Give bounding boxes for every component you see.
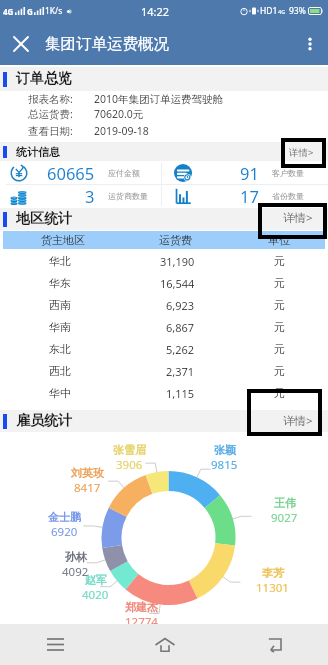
button[interactable]: 17: [164, 184, 328, 207]
staticText: 12774: [125, 614, 158, 630]
staticText: 元: [274, 364, 285, 378]
staticText: 元: [274, 386, 285, 400]
staticText: 地区统计: [16, 210, 72, 228]
staticText: 2,371: [166, 364, 195, 379]
staticText: 赵军: [85, 573, 107, 587]
staticText: 9815: [211, 457, 238, 473]
staticText: 总运货费:: [28, 107, 73, 121]
staticText: 张雪眉: [113, 443, 146, 457]
staticText: 31,190: [160, 254, 195, 269]
staticText: 雇员统计: [16, 412, 72, 430]
staticText: 8417: [74, 480, 101, 496]
staticText: 2019-09-18: [94, 124, 149, 138]
staticText: 70620.0元: [94, 107, 144, 121]
button[interactable]: 雇员统计: [0, 410, 328, 432]
button[interactable]: 3: [0, 184, 164, 207]
staticText: 元: [274, 276, 285, 290]
staticText: 9027: [271, 510, 298, 526]
staticText: 93%: [289, 5, 306, 17]
staticText: 孙林: [65, 550, 87, 564]
staticText: 91: [240, 162, 259, 184]
staticText: 4G: [3, 6, 14, 17]
staticText: 华北: [49, 254, 71, 268]
button[interactable]: 详情>: [274, 141, 314, 163]
button[interactable]: Home: [110, 624, 219, 665]
staticText: 运货费: [159, 233, 192, 247]
button[interactable]: 详情>: [273, 410, 313, 432]
staticText: HD1: [260, 5, 278, 17]
staticText: 郑建杰: [125, 600, 158, 614]
staticText: 4092: [62, 564, 89, 580]
button[interactable]: 详情>: [273, 207, 313, 229]
staticText: 4020: [82, 587, 109, 603]
staticText: G: [27, 6, 33, 17]
staticText: 11301: [256, 580, 289, 596]
button[interactable]: More options: [295, 29, 324, 58]
button[interactable]: Recent apps: [0, 624, 110, 665]
staticText: 报表名称:: [28, 92, 73, 106]
staticText: 17: [240, 185, 259, 207]
staticText: 元: [274, 254, 285, 268]
staticText: 运货商数量: [108, 191, 148, 201]
staticText: 货主地区: [41, 233, 85, 247]
staticText: 60665: [47, 162, 95, 184]
staticText: 集团订单运费概况: [45, 34, 169, 54]
staticText: 刘英玫: [71, 466, 104, 480]
staticText: 应付金额: [108, 168, 140, 178]
staticText: 详情>: [283, 210, 313, 226]
button[interactable]: Back: [219, 624, 328, 665]
button[interactable]: 订单总览: [0, 67, 328, 91]
staticText: 2010年集团订单运费驾驶舱: [94, 92, 224, 106]
staticText: 1K/s: [45, 5, 63, 17]
staticText: 省份数量: [272, 191, 304, 201]
staticText: 3906: [116, 457, 143, 473]
button[interactable]: 60665: [0, 161, 164, 184]
staticText: 客户数量: [272, 168, 304, 178]
staticText: 东北: [49, 342, 71, 356]
staticText: 元: [274, 342, 285, 356]
staticText: 6920: [51, 524, 78, 540]
staticText: 14:22: [141, 4, 170, 19]
staticText: 金士鹏: [48, 510, 81, 524]
staticText: 统计信息: [16, 145, 60, 159]
button[interactable]: 91: [164, 161, 328, 184]
staticText: 详情>: [283, 413, 313, 429]
staticText: 华中: [49, 386, 71, 400]
staticText: 李芳: [262, 566, 284, 580]
staticText: 详情>: [289, 146, 314, 159]
staticText: 元: [274, 320, 285, 334]
staticText: 单位: [268, 233, 290, 247]
staticText: 3: [85, 185, 95, 207]
button[interactable]: 地区统计: [0, 208, 328, 230]
staticText: 元: [274, 298, 285, 312]
staticText: 西北: [49, 364, 71, 378]
button[interactable]: 统计信息: [0, 142, 328, 161]
staticText: 张颖: [214, 443, 236, 457]
staticText: 华东: [49, 276, 71, 290]
staticText: 订单总览: [16, 70, 72, 88]
staticText: 查看日期:: [28, 124, 73, 138]
staticText: 6,923: [166, 298, 195, 313]
staticText: 5,262: [166, 342, 195, 357]
staticText: 16,544: [160, 276, 195, 291]
staticText: 华南: [49, 320, 71, 334]
staticText: 1,115: [166, 386, 195, 401]
staticText: 王伟: [274, 496, 296, 510]
staticText: 6,867: [166, 320, 195, 335]
button[interactable]: Close: [6, 29, 35, 58]
staticText: 4G: [278, 8, 286, 15]
staticText: 西南: [49, 298, 71, 312]
